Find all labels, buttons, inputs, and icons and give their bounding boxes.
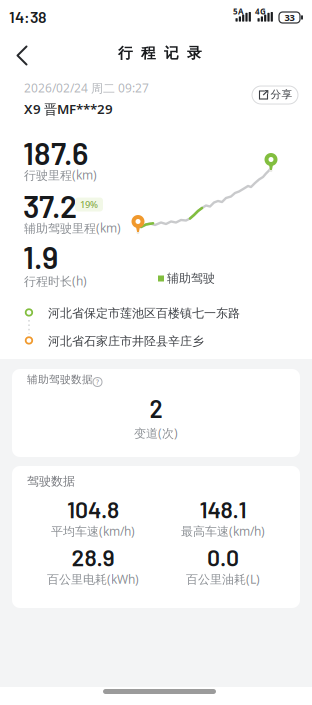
- staticText: 驾驶数据: [27, 474, 75, 489]
- staticText: X9 晋MF***29: [24, 100, 113, 118]
- staticText: 行驶里程(km): [24, 167, 97, 183]
- staticText: 37.2: [23, 187, 77, 224]
- staticText: 分享: [270, 88, 292, 101]
- staticText: 行程记录: [118, 44, 202, 62]
- staticText: 28.9: [71, 543, 114, 571]
- staticText: 行程时长(h): [24, 273, 87, 289]
- staticText: 百公里电耗(kWh): [47, 571, 139, 587]
- staticText: 辅助驾驶数据: [27, 373, 93, 386]
- staticText: 33: [284, 11, 294, 24]
- staticText: 最高车速(km/h): [181, 523, 265, 539]
- staticText: 辅助驾驶: [167, 271, 215, 286]
- button[interactable]: Back: [0, 43, 44, 67]
- staticText: 0.0: [207, 543, 239, 571]
- staticText: 5A: [233, 6, 244, 17]
- staticText: 平均车速(km/h): [51, 523, 135, 539]
- staticText: 2026/02/24 周二 09:27: [24, 80, 149, 96]
- staticText: 19%: [80, 198, 98, 211]
- staticText: 河北省保定市莲池区百楼镇七一东路: [48, 306, 240, 321]
- staticText: 1.9: [23, 238, 58, 275]
- button[interactable]: 分享: [252, 86, 298, 104]
- staticText: 百公里油耗(L): [186, 571, 260, 587]
- staticText: 2: [149, 394, 162, 423]
- staticText: 187.6: [23, 134, 88, 171]
- staticText: 148.1: [199, 495, 246, 523]
- staticText: ?: [96, 378, 99, 386]
- button[interactable]: 辅助驾驶数据说明: [92, 376, 103, 387]
- staticText: 辅助驾驶里程(km): [24, 220, 121, 236]
- staticText: 14:38: [9, 7, 47, 26]
- staticText: 河北省石家庄市井陉县辛庄乡: [48, 334, 204, 349]
- staticText: 104.8: [67, 495, 119, 523]
- staticText: 4G: [255, 6, 266, 17]
- staticText: 变道(次): [134, 425, 178, 441]
